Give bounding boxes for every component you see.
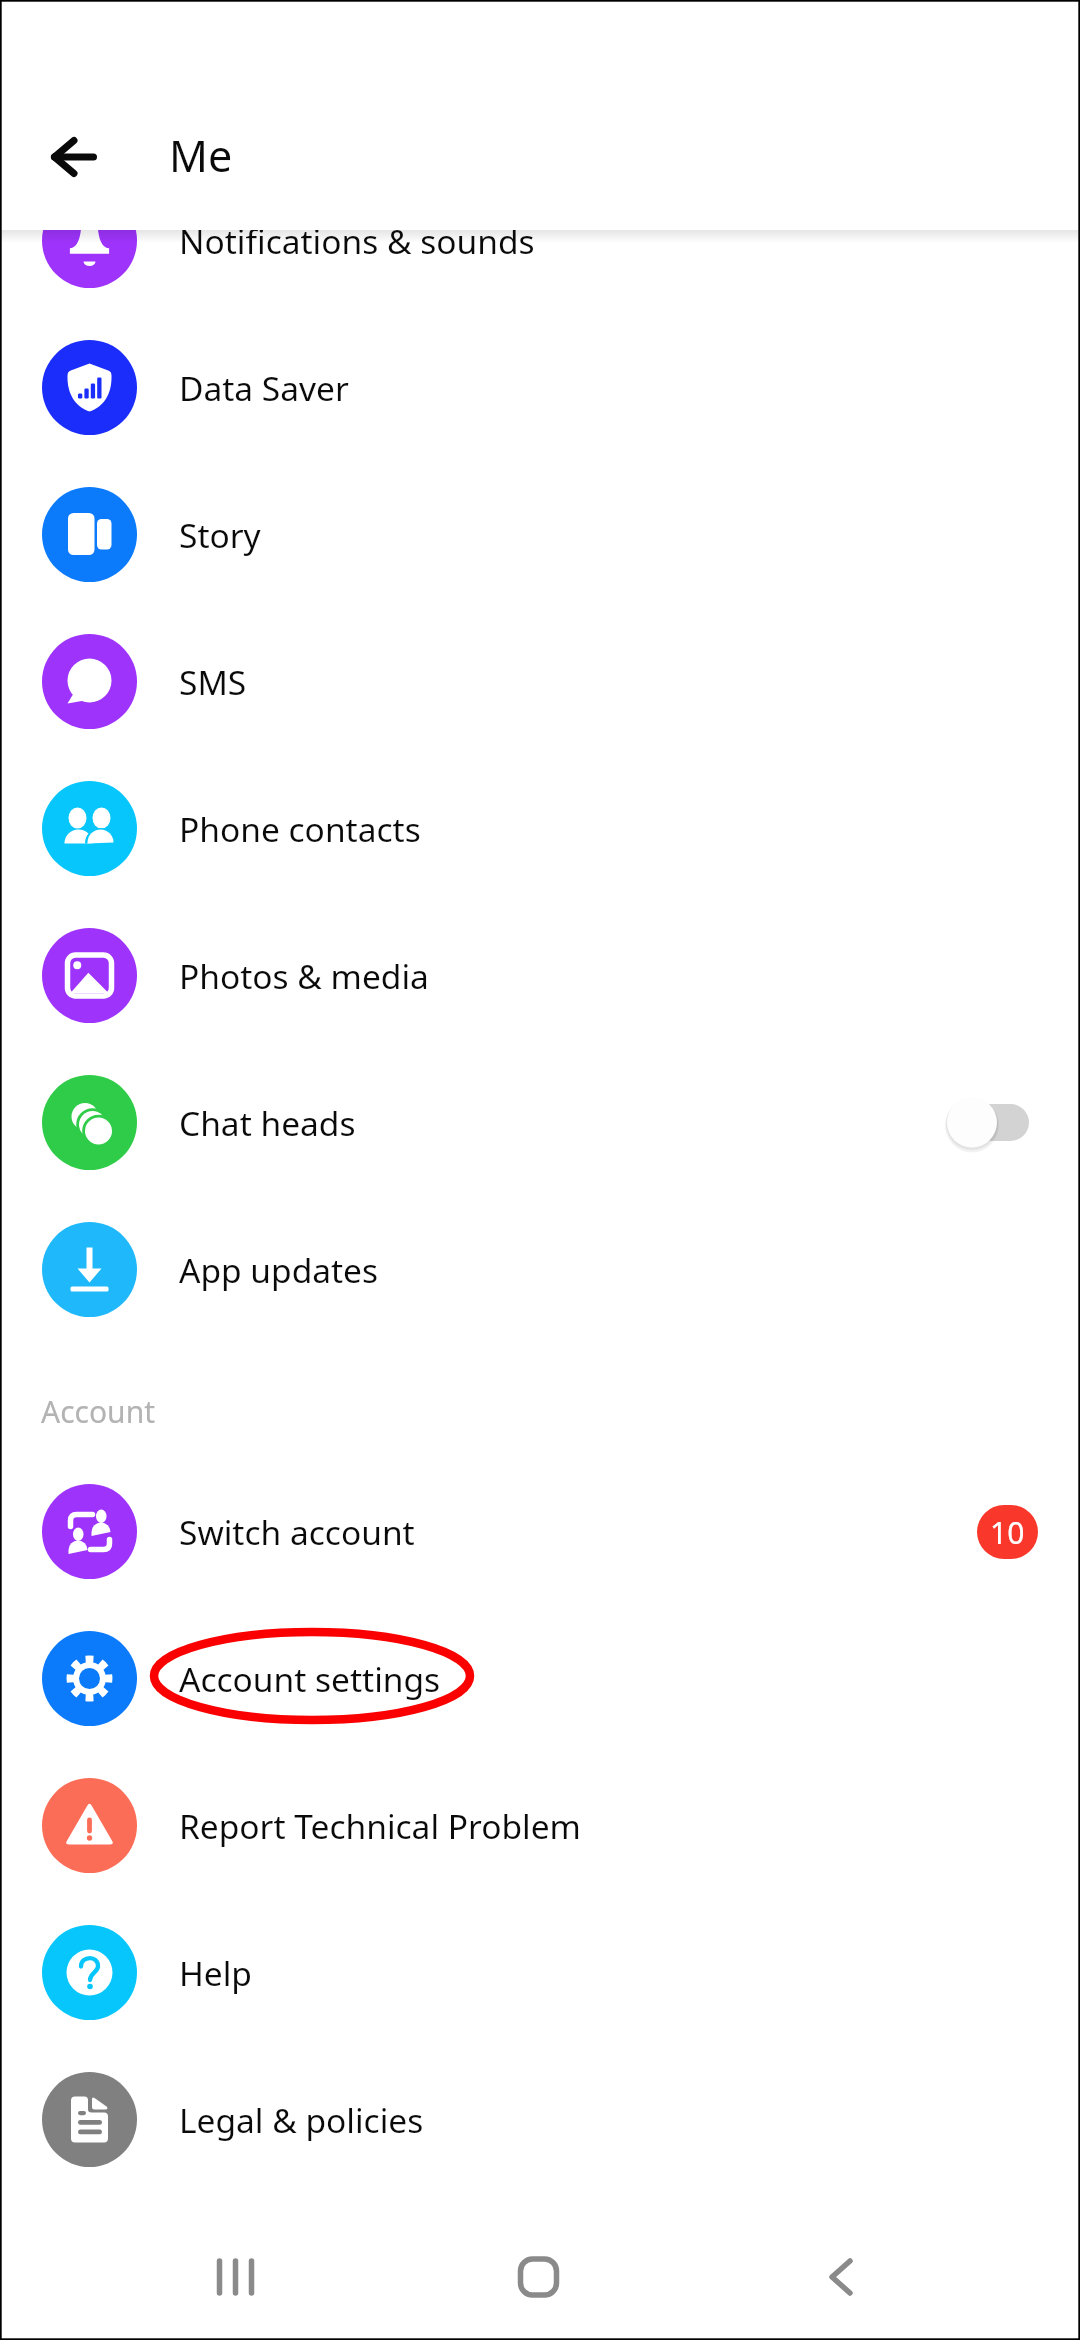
button[interactable]: Report Technical Problem <box>0 1752 1080 1899</box>
button[interactable]: SMS <box>0 608 1080 755</box>
staticText: Notifications & sounds <box>179 218 535 264</box>
button[interactable]: Help <box>0 1899 1080 2046</box>
button[interactable]: Phone contacts <box>0 755 1080 902</box>
button[interactable]: Account settings <box>0 1605 1080 1752</box>
button[interactable]: 10 <box>977 1505 1038 1559</box>
staticText: App updates <box>179 1247 379 1293</box>
button[interactable]: Chat heads toggle <box>950 1078 1080 1168</box>
staticText: 10 <box>990 1512 1025 1553</box>
button[interactable]: Legal & policies <box>0 2046 1080 2193</box>
button[interactable]: Chat heads <box>0 1049 1080 1196</box>
staticText: Photos & media <box>179 953 429 999</box>
staticText: Phone contacts <box>179 806 421 852</box>
staticText: Account <box>41 1391 156 1432</box>
button[interactable]: Back <box>720 2190 1080 2340</box>
button[interactable]: Data Saver <box>0 314 1080 461</box>
staticText: Report Technical Problem <box>179 1803 581 1849</box>
staticText: Switch account <box>179 1509 415 1555</box>
staticText: Account settings <box>179 1656 441 1702</box>
button[interactable]: Switch account <box>0 1458 1080 1605</box>
button[interactable]: Recent apps <box>0 2190 360 2340</box>
button[interactable]: Home <box>360 2190 720 2340</box>
staticText: Me <box>169 126 233 185</box>
staticText: Help <box>179 1950 252 1996</box>
staticText: Chat heads <box>179 1100 356 1146</box>
button[interactable]: Back <box>29 113 117 201</box>
button[interactable]: Photos & media <box>0 902 1080 1049</box>
button[interactable]: App updates <box>0 1196 1080 1343</box>
staticText: Legal & policies <box>179 2097 424 2143</box>
staticText: Story <box>179 512 261 558</box>
button[interactable]: Notifications & sounds <box>0 167 1080 314</box>
button[interactable]: Story <box>0 461 1080 608</box>
staticText: SMS <box>179 659 247 705</box>
staticText: Data Saver <box>179 365 349 411</box>
